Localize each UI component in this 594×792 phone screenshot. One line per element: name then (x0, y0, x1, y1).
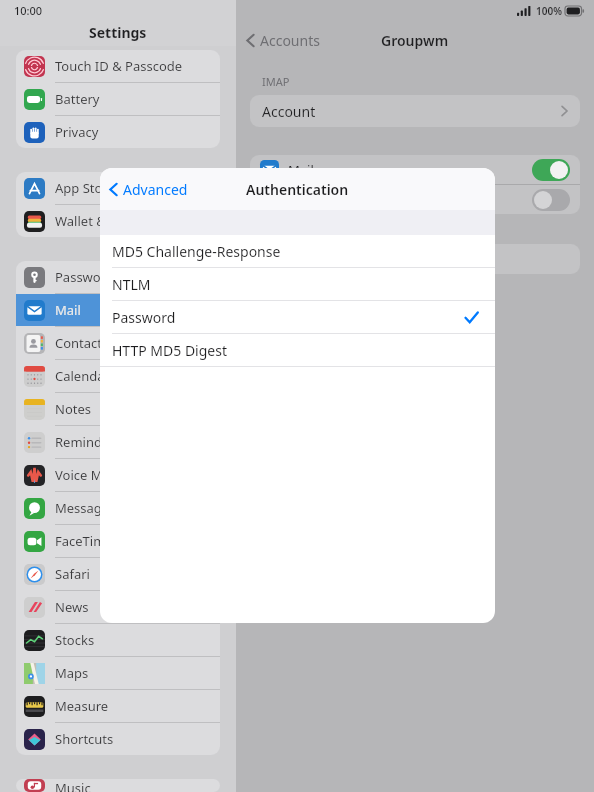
button[interactable]: FaceTime (16, 525, 220, 557)
staticText: Advanced (123, 180, 188, 199)
staticText: Reminders (55, 433, 121, 451)
button[interactable]: Accounts (236, 27, 328, 54)
staticText: Notes (288, 191, 324, 209)
button[interactable]: Voice Memos (16, 459, 220, 491)
staticText: Groupwm (381, 31, 449, 50)
staticText: Maps (55, 664, 89, 682)
staticText: Messages (55, 499, 116, 517)
button[interactable]: App Store (16, 172, 220, 204)
button[interactable]: Privacy (16, 116, 220, 148)
staticText: Settings (89, 23, 147, 42)
staticText: Battery (55, 90, 100, 108)
button[interactable]: Wallet & Apple Pay (16, 205, 220, 237)
staticText: App Store (55, 179, 115, 197)
staticText: 100% (536, 4, 562, 18)
staticText: Passwords (55, 268, 121, 286)
button[interactable]: Battery (16, 83, 220, 115)
button[interactable]: Touch ID & Passcode (16, 50, 220, 82)
staticText: Privacy (55, 123, 99, 141)
button[interactable]: Stocks (16, 624, 220, 656)
button[interactable]: Messages (16, 492, 220, 524)
button[interactable]: Notes (250, 185, 580, 214)
staticText: Contacts (55, 334, 109, 352)
staticText: Touch ID & Passcode (55, 57, 183, 75)
staticText: Mail (55, 301, 81, 319)
button[interactable]: Mail (16, 294, 220, 326)
staticText: Accounts (260, 31, 320, 50)
button[interactable]: Measure (16, 690, 220, 722)
staticText: IMAP (262, 74, 290, 89)
button[interactable]: Safari (16, 558, 220, 590)
button[interactable]: Passwords (16, 261, 220, 293)
button[interactable]: Music (16, 779, 220, 792)
button[interactable]: News (16, 591, 220, 623)
staticText: Music (55, 779, 91, 792)
button[interactable]: Reminders (16, 426, 220, 458)
button[interactable] (250, 244, 580, 274)
button[interactable]: Mail (250, 155, 580, 184)
staticText: Stocks (55, 631, 95, 649)
staticText: Safari (55, 565, 90, 583)
staticText: Voice Memos (55, 466, 137, 484)
staticText: MD5 Challenge-Response (112, 242, 281, 261)
button[interactable]: Password (100, 301, 495, 333)
button[interactable]: Advanced (100, 175, 196, 204)
staticText: 10:00 (14, 3, 43, 18)
staticText: HTTP MD5 Digest (112, 341, 227, 360)
button[interactable]: Account (250, 95, 580, 127)
staticText: Notes (55, 400, 91, 418)
staticText: Calendar (55, 367, 110, 385)
staticText: Wallet & Apple Pay (55, 212, 170, 230)
button[interactable]: HTTP MD5 Digest (100, 334, 495, 366)
staticText: Account (262, 102, 316, 121)
staticText: Shortcuts (55, 730, 114, 748)
button[interactable]: Notes (16, 393, 220, 425)
button[interactable]: Maps (16, 657, 220, 689)
button[interactable]: Shortcuts (16, 723, 220, 755)
button[interactable]: Calendar (16, 360, 220, 392)
staticText: News (55, 598, 89, 616)
button[interactable]: Notes off (532, 189, 570, 211)
button[interactable]: MD5 Challenge-Response (100, 235, 495, 267)
staticText: Mail (288, 161, 314, 179)
button[interactable]: NTLM (100, 268, 495, 300)
staticText: NTLM (112, 275, 151, 294)
button[interactable]: Contacts (16, 327, 220, 359)
staticText: Authentication (246, 180, 349, 199)
staticText: Measure (55, 697, 109, 715)
staticText: Password (112, 308, 176, 327)
staticText: FaceTime (55, 532, 113, 550)
button[interactable]: Mail on (532, 159, 570, 181)
